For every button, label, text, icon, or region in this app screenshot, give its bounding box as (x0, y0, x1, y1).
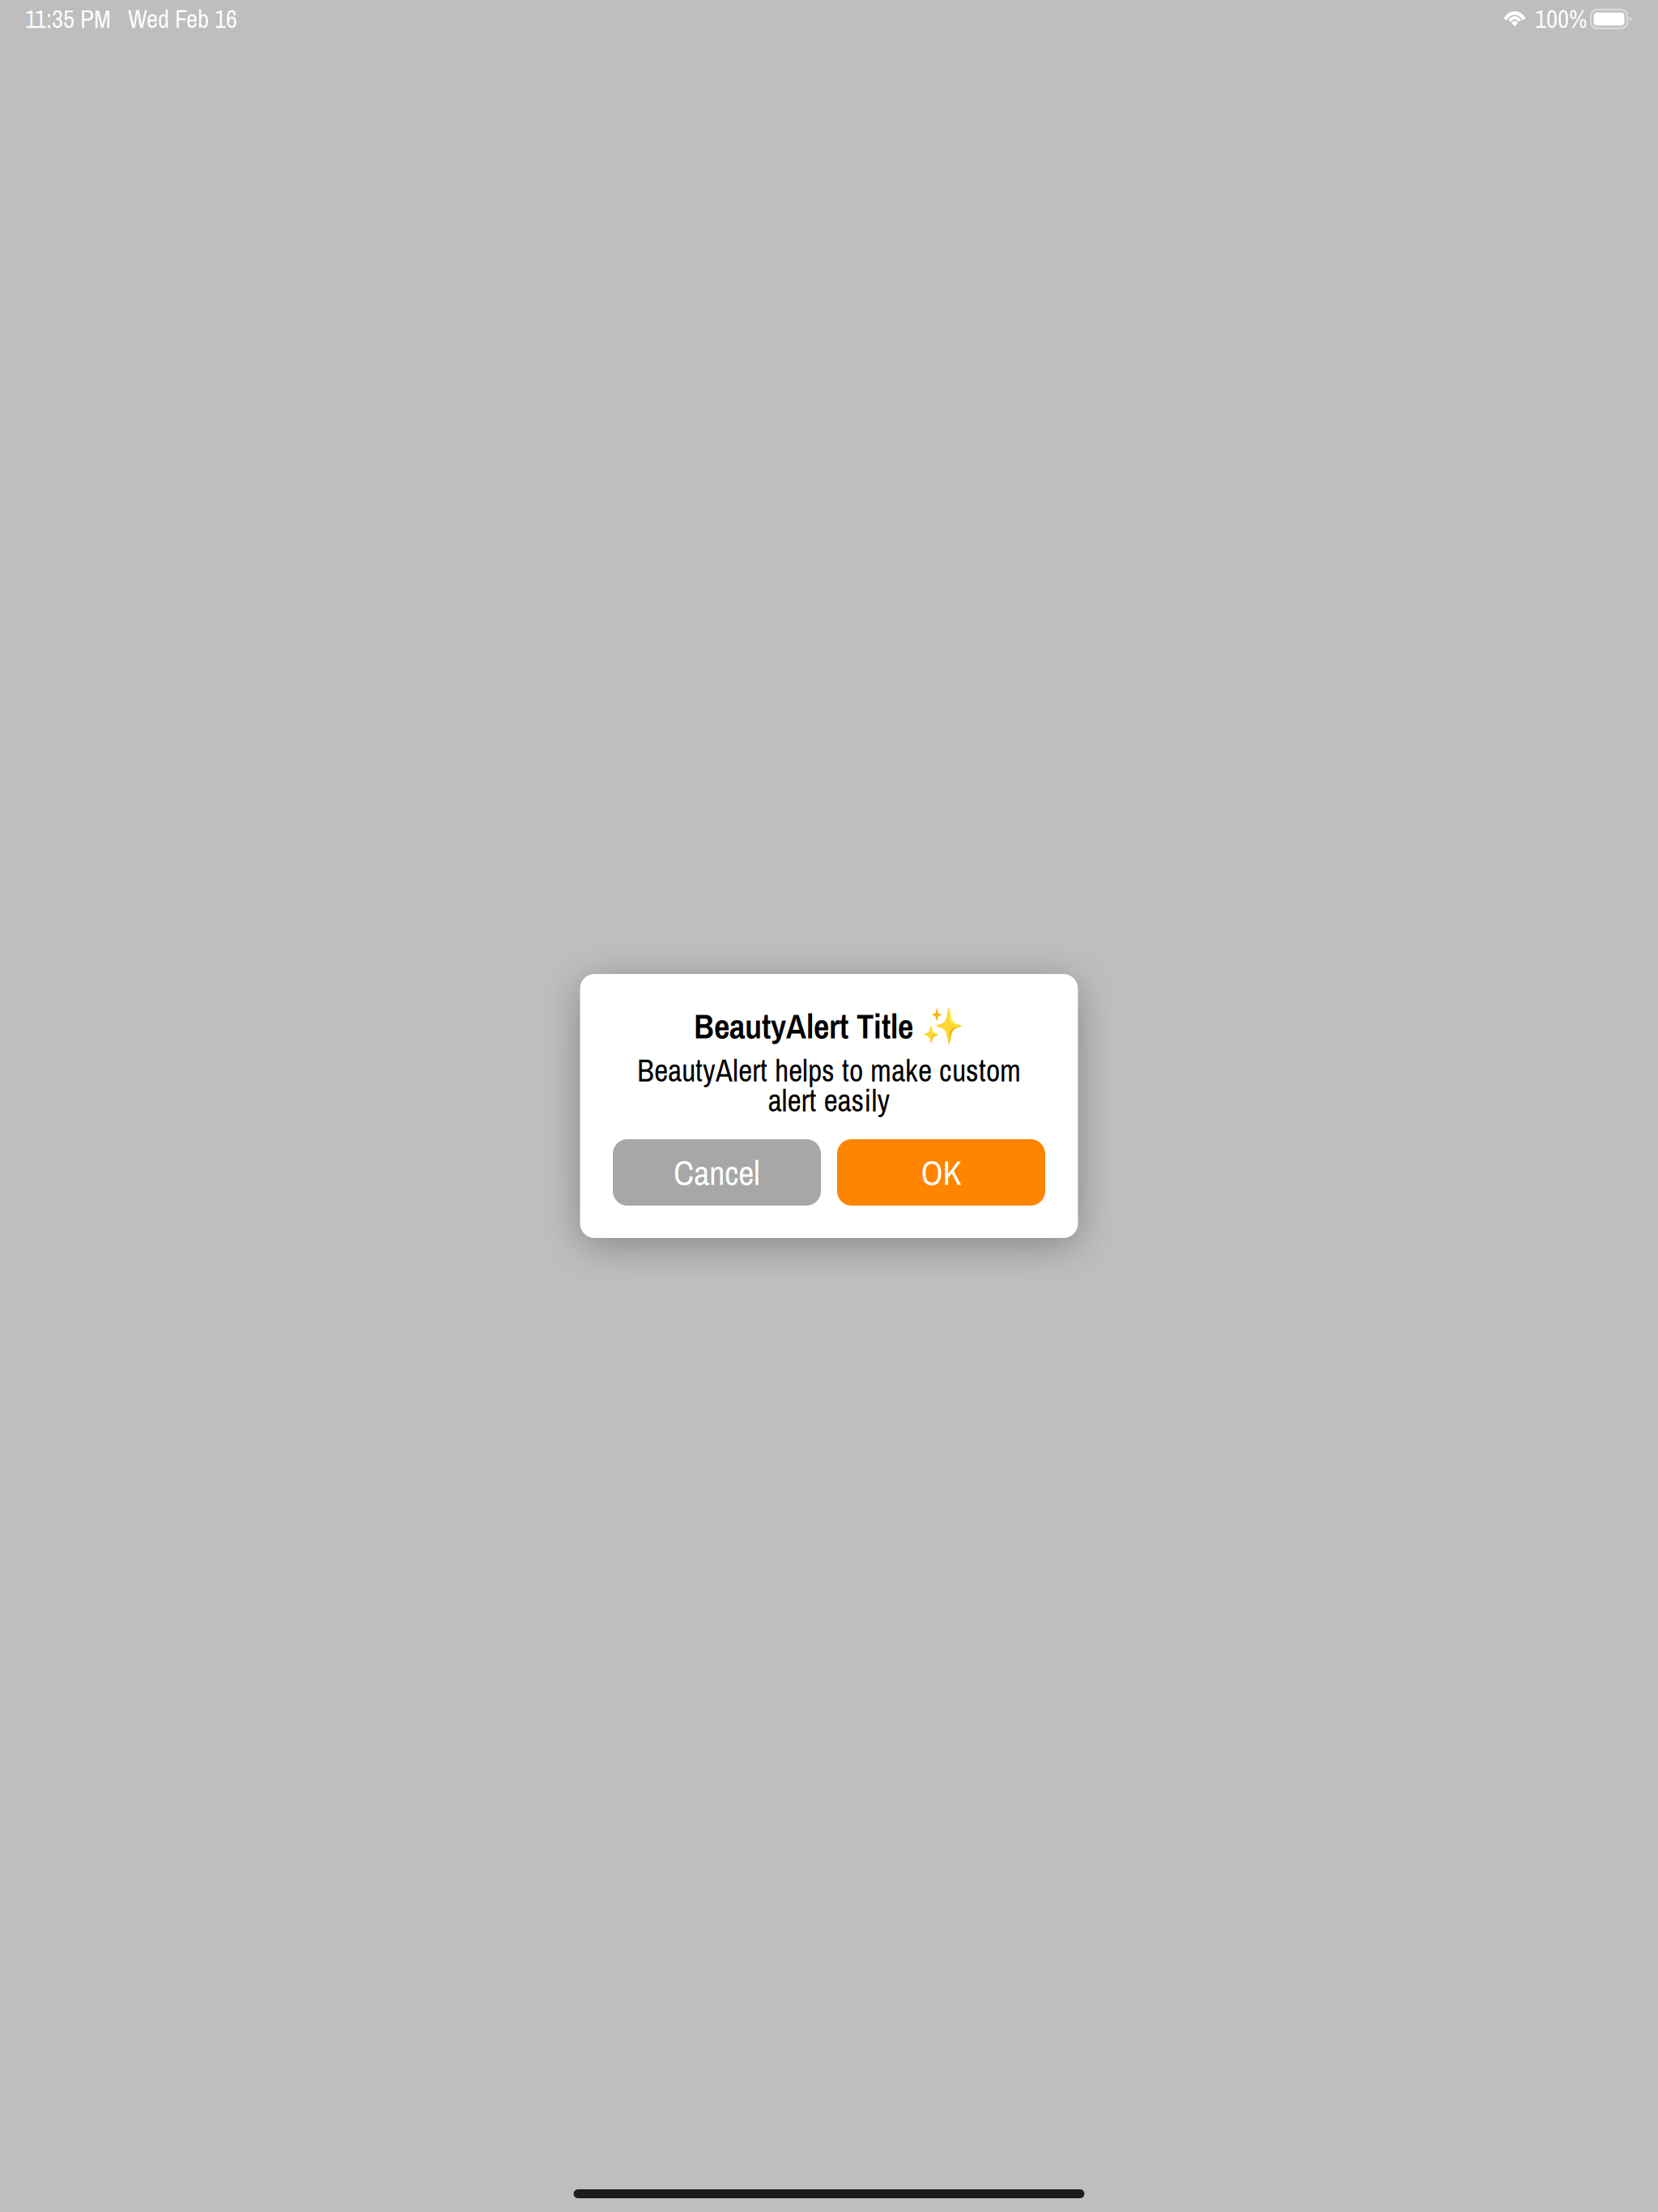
button[interactable]: Cancel (613, 1139, 821, 1206)
staticText: OK (921, 1149, 961, 1196)
staticText: 11:35 PM (25, 2, 111, 36)
staticText: BeautyAlert Title ✨ (694, 1003, 964, 1049)
staticText: Cancel (674, 1149, 760, 1196)
staticText: Wed Feb 16 (128, 2, 237, 36)
staticText: BeautyAlert helps to make custom (637, 1050, 1021, 1091)
button[interactable]: OK (837, 1139, 1045, 1206)
staticText: alert easily (768, 1080, 890, 1121)
staticText: 100% (1535, 2, 1587, 36)
